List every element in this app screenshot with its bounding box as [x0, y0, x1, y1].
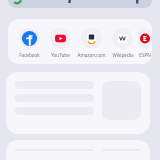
button[interactable]: Facebook — [14, 28, 45, 58]
staticText: Facebook — [19, 52, 40, 58]
button[interactable]: ESPN — [138, 28, 152, 58]
button[interactable]: Wikipedia — [107, 28, 138, 58]
staticText: Wikipedia — [112, 52, 134, 58]
staticText: Amazon.com — [77, 52, 106, 58]
button[interactable]: Amazon.com — [76, 28, 107, 58]
button[interactable] — [6, 140, 150, 160]
button[interactable]: YouTube — [45, 28, 76, 58]
staticText: YouTube — [51, 52, 70, 58]
staticText: ESPN — [139, 52, 151, 58]
button[interactable]: Search — [8, 0, 152, 8]
button[interactable] — [6, 72, 150, 134]
